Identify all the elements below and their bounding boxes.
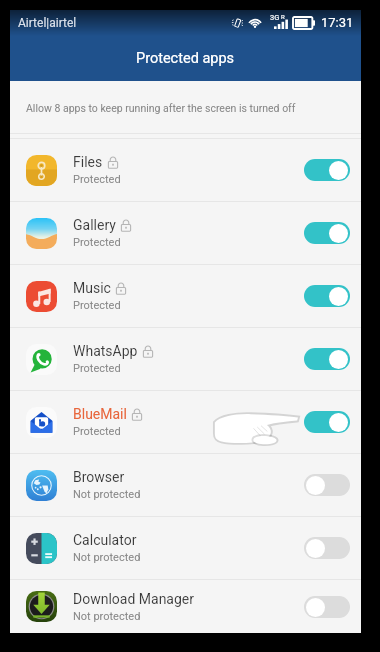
staticText: Not protected [73, 488, 141, 501]
staticText: Music [73, 280, 111, 296]
button[interactable]: Protected toggle on [304, 411, 350, 433]
button[interactable]: Protected toggle off [304, 474, 350, 496]
button[interactable]: Download Manager [10, 580, 361, 633]
button[interactable]: Browser [10, 454, 361, 516]
button[interactable]: Calculator [10, 517, 361, 579]
staticText: Protected [73, 173, 121, 186]
staticText: Calculator [73, 532, 137, 548]
staticText: Not protected [73, 551, 141, 564]
staticText: Download Manager [73, 591, 195, 607]
button[interactable]: Protected toggle on [304, 222, 350, 244]
staticText: Protected [73, 425, 121, 438]
staticText: 3G [270, 13, 280, 22]
button[interactable]: Music [10, 265, 361, 327]
staticText: Protected apps [136, 50, 235, 67]
button[interactable]: Gallery [10, 202, 361, 264]
staticText: WhatsApp [73, 343, 138, 359]
button[interactable]: BlueMail [10, 391, 361, 453]
button[interactable]: Protected toggle on [304, 159, 350, 181]
staticText: Protected [73, 299, 121, 312]
staticText: 17:31 [321, 15, 354, 30]
staticText: Files [73, 154, 103, 170]
button[interactable]: Protected toggle on [304, 348, 350, 370]
staticText: Airtel|airtel [18, 16, 77, 30]
staticText: Not protected [73, 610, 141, 623]
button[interactable]: Protected toggle off [304, 596, 350, 618]
button[interactable]: Protected toggle off [304, 537, 350, 559]
staticText: Gallery [73, 217, 116, 233]
staticText: Browser [73, 469, 125, 485]
button[interactable]: WhatsApp [10, 328, 361, 390]
button[interactable]: Files [10, 139, 361, 201]
staticText: R [281, 13, 285, 20]
staticText: Allow 8 apps to keep running after the s… [26, 102, 296, 114]
staticText: Protected [73, 236, 121, 249]
staticText: BlueMail [73, 406, 127, 422]
staticText: Protected [73, 362, 121, 375]
button[interactable]: Protected toggle on [304, 285, 350, 307]
